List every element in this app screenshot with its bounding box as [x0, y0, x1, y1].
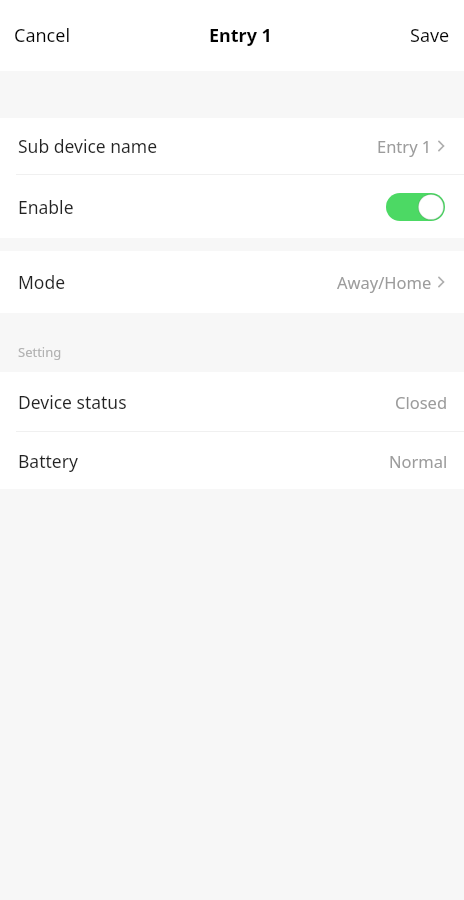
button[interactable]: Mode [0, 251, 464, 313]
button[interactable]: Battery [0, 432, 464, 489]
staticText: Closed [395, 391, 448, 413]
button[interactable]: Save [396, 13, 464, 58]
staticText: Setting [18, 343, 62, 361]
button[interactable]: Enable [0, 175, 464, 238]
staticText: Enable [18, 195, 74, 219]
staticText: Battery [18, 449, 78, 473]
button[interactable]: Cancel [0, 13, 85, 58]
staticText: Cancel [14, 23, 71, 48]
staticText: Save [410, 23, 450, 48]
button[interactable]: Sub device name [0, 118, 464, 174]
staticText: Entry 1 [209, 23, 272, 48]
button[interactable]: Device status [0, 372, 464, 431]
button[interactable]: Enable toggle [386, 193, 445, 221]
staticText: Sub device name [18, 134, 158, 158]
staticText: Entry 1 [377, 135, 432, 157]
staticText: Normal [389, 450, 448, 472]
staticText: Mode [18, 270, 66, 294]
staticText: Device status [18, 390, 127, 414]
staticText: Away/Home [337, 271, 432, 293]
